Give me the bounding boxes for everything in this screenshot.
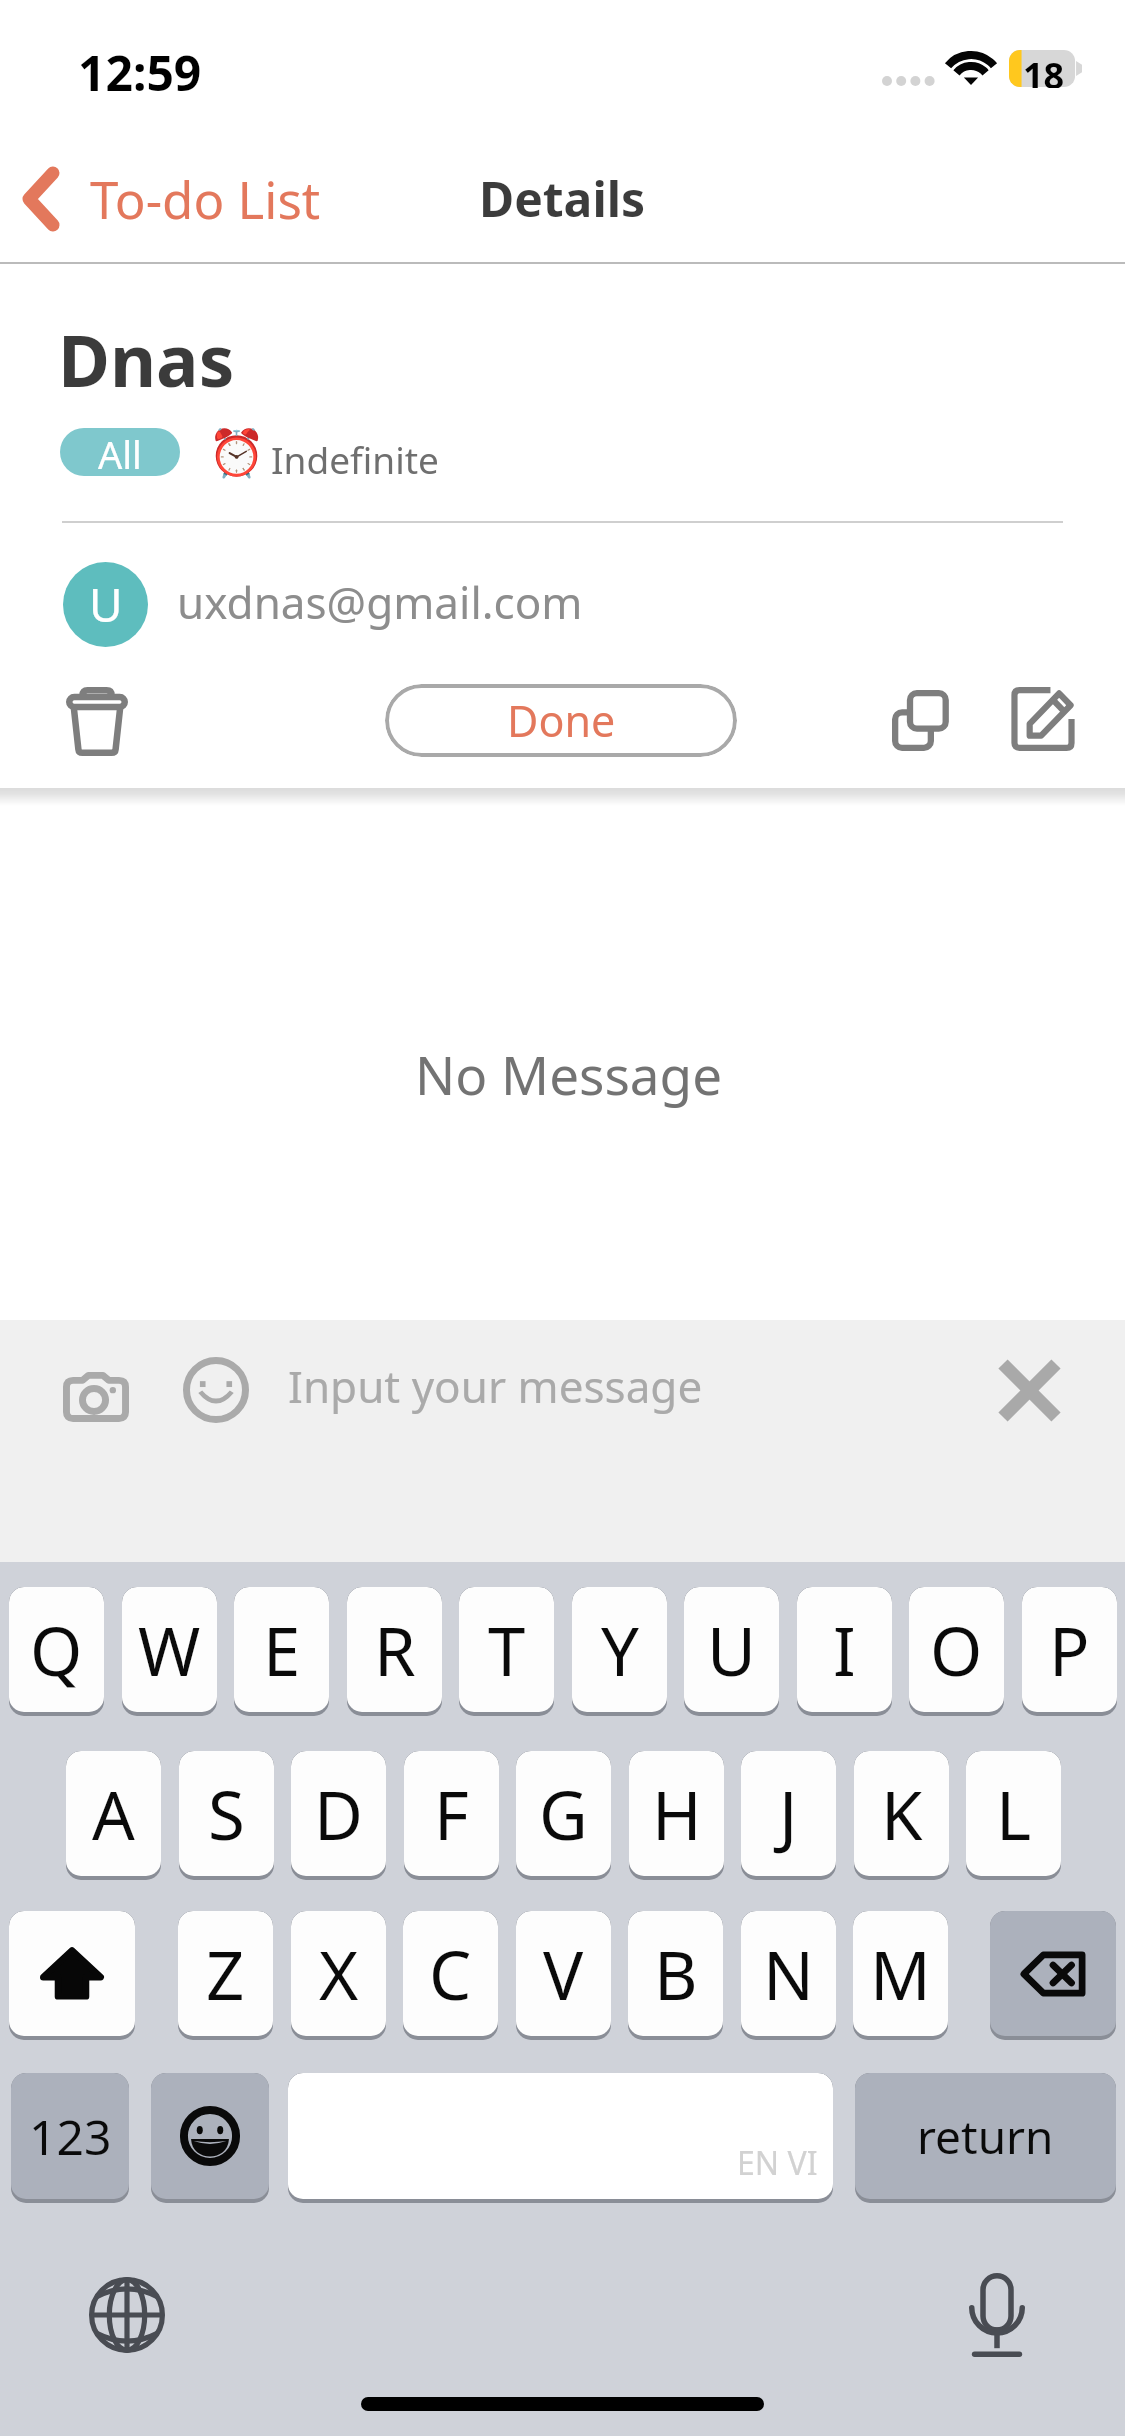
button[interactable]: O bbox=[909, 1587, 1004, 1716]
staticText: M bbox=[870, 1928, 931, 2019]
staticText: Dnas bbox=[58, 311, 235, 408]
button[interactable]: T bbox=[459, 1587, 554, 1716]
button[interactable]: Space bbox=[288, 2073, 833, 2203]
staticText: No Message bbox=[415, 1038, 723, 1110]
staticText: F bbox=[434, 1768, 469, 1859]
button[interactable]: P bbox=[1022, 1587, 1117, 1716]
staticText: A bbox=[92, 1768, 135, 1859]
staticText: 18 bbox=[1023, 51, 1065, 88]
staticText: All bbox=[98, 428, 142, 476]
button[interactable]: R bbox=[347, 1587, 442, 1716]
button[interactable]: Close bbox=[981, 1342, 1077, 1438]
staticText: O bbox=[930, 1604, 983, 1695]
button[interactable]: Emoji keyboard bbox=[151, 2073, 269, 2203]
staticText: R bbox=[374, 1604, 416, 1695]
staticText: C bbox=[429, 1928, 472, 2019]
button[interactable]: X bbox=[291, 1911, 386, 2040]
button[interactable]: K bbox=[854, 1751, 949, 1880]
button[interactable]: Q bbox=[9, 1587, 104, 1716]
staticText: 123 bbox=[29, 2104, 112, 2169]
button[interactable]: Z bbox=[178, 1911, 273, 2040]
staticText: U bbox=[89, 573, 123, 636]
staticText: Q bbox=[30, 1604, 83, 1695]
button[interactable]: Emoji bbox=[168, 1342, 264, 1438]
button[interactable]: A bbox=[66, 1751, 161, 1880]
button[interactable]: Delete bbox=[52, 676, 142, 766]
button[interactable]: B bbox=[628, 1911, 723, 2040]
staticText: To-do List bbox=[90, 164, 321, 233]
button[interactable]: F bbox=[404, 1751, 499, 1880]
button[interactable]: D bbox=[291, 1751, 386, 1880]
staticText: K bbox=[881, 1768, 923, 1859]
button[interactable]: Done bbox=[385, 684, 737, 757]
staticText: Input your message bbox=[288, 1356, 703, 1416]
button[interactable]: H bbox=[629, 1751, 724, 1880]
button[interactable]: To-do List bbox=[0, 148, 339, 249]
staticText: E bbox=[263, 1604, 301, 1695]
button[interactable]: Switch keyboard bbox=[82, 2270, 172, 2360]
button[interactable]: L bbox=[966, 1751, 1061, 1880]
staticText: Indefinite bbox=[271, 434, 439, 484]
button[interactable]: J bbox=[741, 1751, 836, 1880]
staticText: D bbox=[314, 1768, 363, 1859]
button[interactable]: Dictate bbox=[952, 2270, 1042, 2360]
staticText: W bbox=[138, 1604, 201, 1695]
staticText: I bbox=[833, 1604, 856, 1695]
staticText: Z bbox=[206, 1928, 245, 2019]
button[interactable]: M bbox=[853, 1911, 948, 2040]
button[interactable]: I bbox=[797, 1587, 892, 1716]
button[interactable]: return bbox=[855, 2073, 1116, 2203]
staticText: V bbox=[543, 1928, 584, 2019]
button[interactable]: 123 bbox=[11, 2073, 129, 2203]
button[interactable]: Camera bbox=[48, 1347, 144, 1443]
staticText: EN VI bbox=[737, 2141, 818, 2185]
staticText: G bbox=[539, 1768, 588, 1859]
button[interactable]: V bbox=[516, 1911, 611, 2040]
staticText: 12:59 bbox=[78, 40, 202, 105]
button[interactable]: C bbox=[403, 1911, 498, 2040]
button[interactable]: All bbox=[60, 428, 180, 476]
staticText: S bbox=[208, 1768, 245, 1859]
staticText: U bbox=[707, 1604, 756, 1695]
staticText: return bbox=[917, 2105, 1054, 2168]
staticText: P bbox=[1049, 1604, 1090, 1695]
button[interactable]: W bbox=[122, 1587, 217, 1716]
staticText: Details bbox=[479, 166, 646, 231]
staticText: uxdnas@gmail.com bbox=[177, 572, 583, 632]
button[interactable]: N bbox=[741, 1911, 836, 2040]
staticText: ⏰ bbox=[208, 426, 266, 480]
button[interactable]: Edit bbox=[998, 674, 1088, 764]
button[interactable]: Y bbox=[572, 1587, 667, 1716]
staticText: Y bbox=[601, 1604, 639, 1695]
button[interactable]: Shift bbox=[9, 1911, 135, 2040]
staticText: J bbox=[779, 1768, 798, 1859]
staticText: Done bbox=[507, 691, 616, 750]
button[interactable]: E bbox=[234, 1587, 329, 1716]
button[interactable]: Copy bbox=[877, 675, 967, 765]
staticText: N bbox=[763, 1928, 814, 2019]
button[interactable]: Backspace bbox=[990, 1911, 1116, 2040]
staticText: T bbox=[488, 1604, 526, 1695]
staticText: L bbox=[996, 1768, 1032, 1859]
staticText: X bbox=[319, 1928, 359, 2019]
button[interactable]: U bbox=[684, 1587, 779, 1716]
button[interactable]: S bbox=[179, 1751, 274, 1880]
staticText: H bbox=[652, 1768, 702, 1859]
staticText: B bbox=[654, 1928, 698, 2019]
button[interactable]: G bbox=[516, 1751, 611, 1880]
